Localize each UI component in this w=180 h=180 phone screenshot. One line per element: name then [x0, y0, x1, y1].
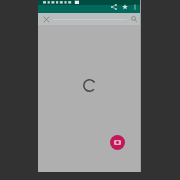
- button[interactable]: Close search: [41, 14, 51, 24]
- button[interactable]: Share: [108, 1, 119, 12]
- button[interactable]: Search: [129, 14, 139, 24]
- button[interactable]: Add: [110, 135, 125, 150]
- button[interactable]: More options: [130, 2, 139, 11]
- button[interactable]: [53, 14, 127, 24]
- button[interactable]: Favorite: [119, 1, 130, 12]
